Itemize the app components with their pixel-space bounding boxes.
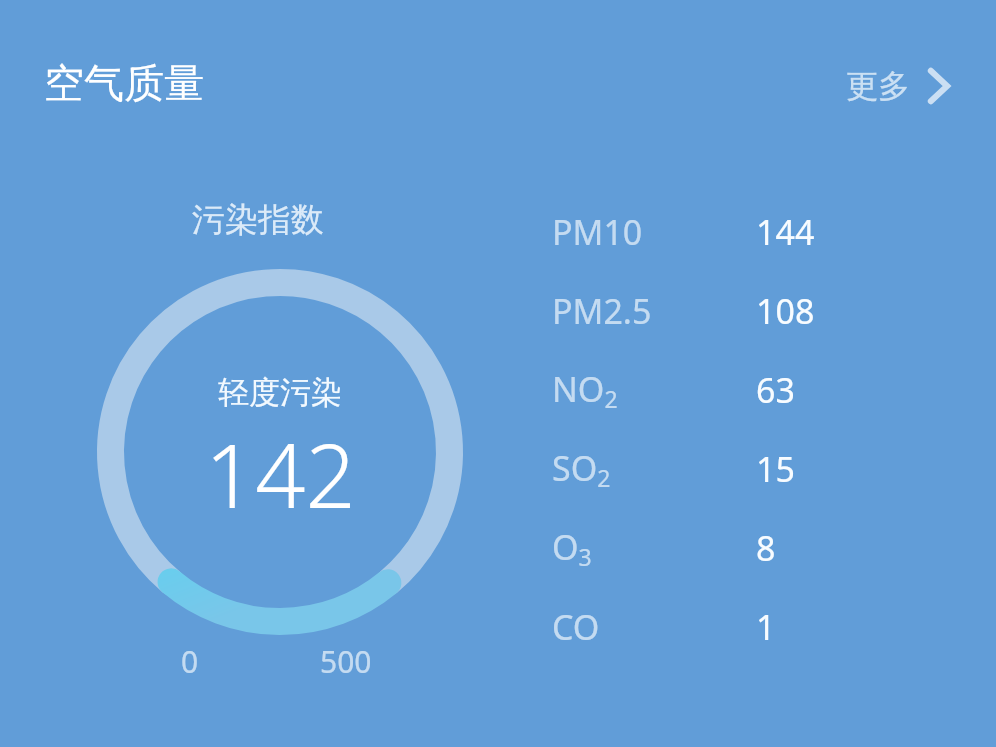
button[interactable]: CO [552,600,872,654]
button[interactable]: PM2.5 [552,284,872,338]
staticText: 0 [181,641,199,682]
staticText: 108 [756,288,815,334]
staticText: 144 [756,209,815,255]
button[interactable]: 空气质量 [40,56,208,110]
staticText: 更多 [846,66,910,106]
staticText: 500 [320,641,372,682]
staticText: 63 [756,367,795,413]
staticText: 1 [756,604,776,650]
staticText: 142 [205,414,356,534]
staticText: 轻度污染 [218,373,342,412]
button[interactable]: PM10 [552,205,872,259]
button[interactable]: SO2 [552,442,872,496]
staticText: NO2 [552,366,618,414]
other: More [926,67,950,105]
staticText: 空气质量 [44,58,204,108]
staticText: 15 [756,446,795,492]
button[interactable]: O3 [552,521,872,575]
staticText: PM10 [552,209,643,255]
staticText: CO [552,604,600,650]
staticText: SO2 [552,445,611,493]
staticText: 8 [756,525,776,571]
staticText: PM2.5 [552,288,652,334]
button[interactable]: NO2 [552,363,872,417]
staticText: O3 [552,524,592,572]
button[interactable]: 更多 [840,62,956,110]
staticText: 污染指数 [192,199,324,241]
